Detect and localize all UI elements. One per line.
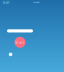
staticText: Start (15, 40, 25, 45)
button[interactable]: Page indicator (9, 53, 12, 56)
staticText: 9:41 (2, 0, 9, 5)
button[interactable]: Start (14, 37, 25, 48)
button[interactable] (7, 29, 33, 32)
